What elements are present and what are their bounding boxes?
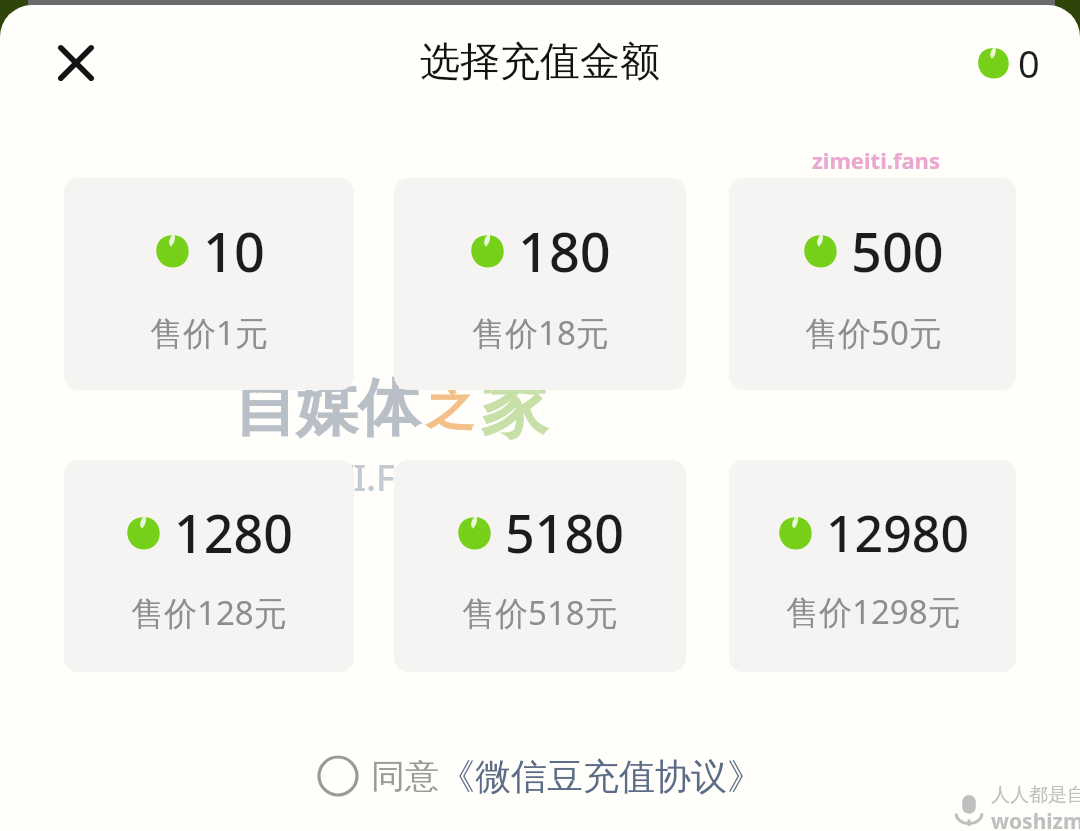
button[interactable]: 0 bbox=[976, 37, 1040, 89]
staticText: 售价1298元 bbox=[786, 589, 961, 634]
button[interactable]: 12980 bbox=[729, 460, 1016, 672]
button[interactable]: Close bbox=[44, 31, 108, 95]
staticText: 之 bbox=[426, 378, 474, 438]
staticText: 售价50元 bbox=[805, 310, 942, 355]
staticText: 180 bbox=[518, 214, 611, 288]
staticText: 选择充值金额 bbox=[420, 36, 660, 86]
button[interactable]: 10 bbox=[64, 178, 354, 390]
staticText: woshizmt.cn bbox=[991, 807, 1080, 831]
staticText: 500 bbox=[851, 214, 944, 288]
staticText: 5180 bbox=[505, 497, 624, 568]
staticText: 自媒体 bbox=[234, 369, 420, 447]
button[interactable]: 500 bbox=[729, 178, 1016, 390]
staticText: 1280 bbox=[174, 497, 293, 568]
staticText: 售价518元 bbox=[462, 590, 618, 635]
staticText: ZIMEITI.FANS bbox=[234, 453, 466, 502]
button[interactable]: 5180 bbox=[394, 460, 686, 672]
staticText: 售价1元 bbox=[150, 310, 268, 355]
staticText: 《微信豆充值协议》 bbox=[439, 754, 763, 799]
button[interactable]: 同意 bbox=[0, 745, 1080, 807]
staticText: 家 bbox=[480, 365, 548, 451]
button[interactable]: 1280 bbox=[64, 460, 354, 672]
staticText: 售价18元 bbox=[472, 310, 609, 355]
staticText: 同意 bbox=[371, 755, 439, 798]
staticText: 10 bbox=[203, 214, 265, 288]
staticText: 人人都是自媒体 bbox=[991, 783, 1080, 807]
staticText: 售价128元 bbox=[131, 590, 287, 635]
staticText: zimeiti.fans bbox=[812, 145, 940, 175]
button[interactable]: 180 bbox=[394, 178, 686, 390]
staticText: 12980 bbox=[826, 499, 969, 567]
staticText: 0 bbox=[1018, 37, 1040, 89]
